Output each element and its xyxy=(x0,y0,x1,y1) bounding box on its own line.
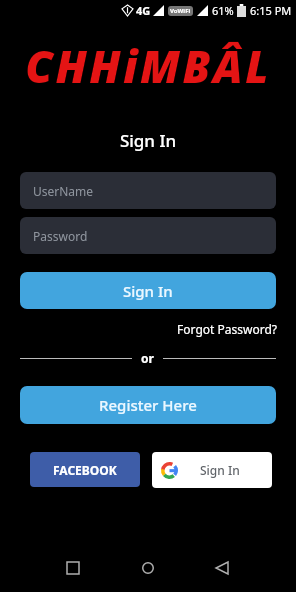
staticText: 61% xyxy=(212,3,234,18)
button[interactable]: Forgot Password? xyxy=(0,321,277,337)
button[interactable]: Sign In xyxy=(152,452,272,488)
staticText: VoWiFi xyxy=(170,7,191,15)
staticText: Password xyxy=(33,228,88,244)
staticText: 4G xyxy=(136,3,151,18)
staticText: FACEBOOK xyxy=(53,462,117,478)
button[interactable]: Password xyxy=(20,217,276,254)
button[interactable] xyxy=(142,562,154,574)
staticText: Sign In xyxy=(0,129,296,152)
button[interactable] xyxy=(67,562,79,574)
button[interactable]: UserName xyxy=(20,172,276,209)
staticText: Sign In xyxy=(123,281,173,301)
button[interactable] xyxy=(216,562,228,574)
staticText: Sign In xyxy=(200,462,240,478)
staticText: UserName xyxy=(33,183,94,199)
staticText: 6:15 PM xyxy=(250,3,292,18)
button[interactable]: Register Here xyxy=(20,386,276,424)
staticText: CHHiMBÂL xyxy=(0,36,296,96)
button[interactable]: FACEBOOK xyxy=(30,452,140,487)
staticText: Register Here xyxy=(99,395,197,415)
staticText: or xyxy=(141,350,154,366)
button[interactable]: Sign In xyxy=(20,272,276,309)
